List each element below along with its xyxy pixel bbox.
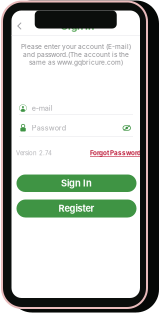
staticText: Register [58,203,94,214]
staticText: Sign In [61,20,94,32]
button[interactable]: Forgot Password [90,149,141,157]
button[interactable]: Back [12,18,26,33]
button[interactable]: Sign In [16,174,136,192]
button[interactable]: Register [16,199,136,217]
staticText: Password [32,124,66,132]
staticText: Version 2.74 [16,149,52,157]
staticText: Sign In [61,178,92,189]
button[interactable]: Show password [121,122,132,133]
staticText: Please enter your account (E-mail) and p… [21,43,131,66]
staticText: Forgot Password [90,149,141,157]
staticText: e-mail [32,104,53,112]
